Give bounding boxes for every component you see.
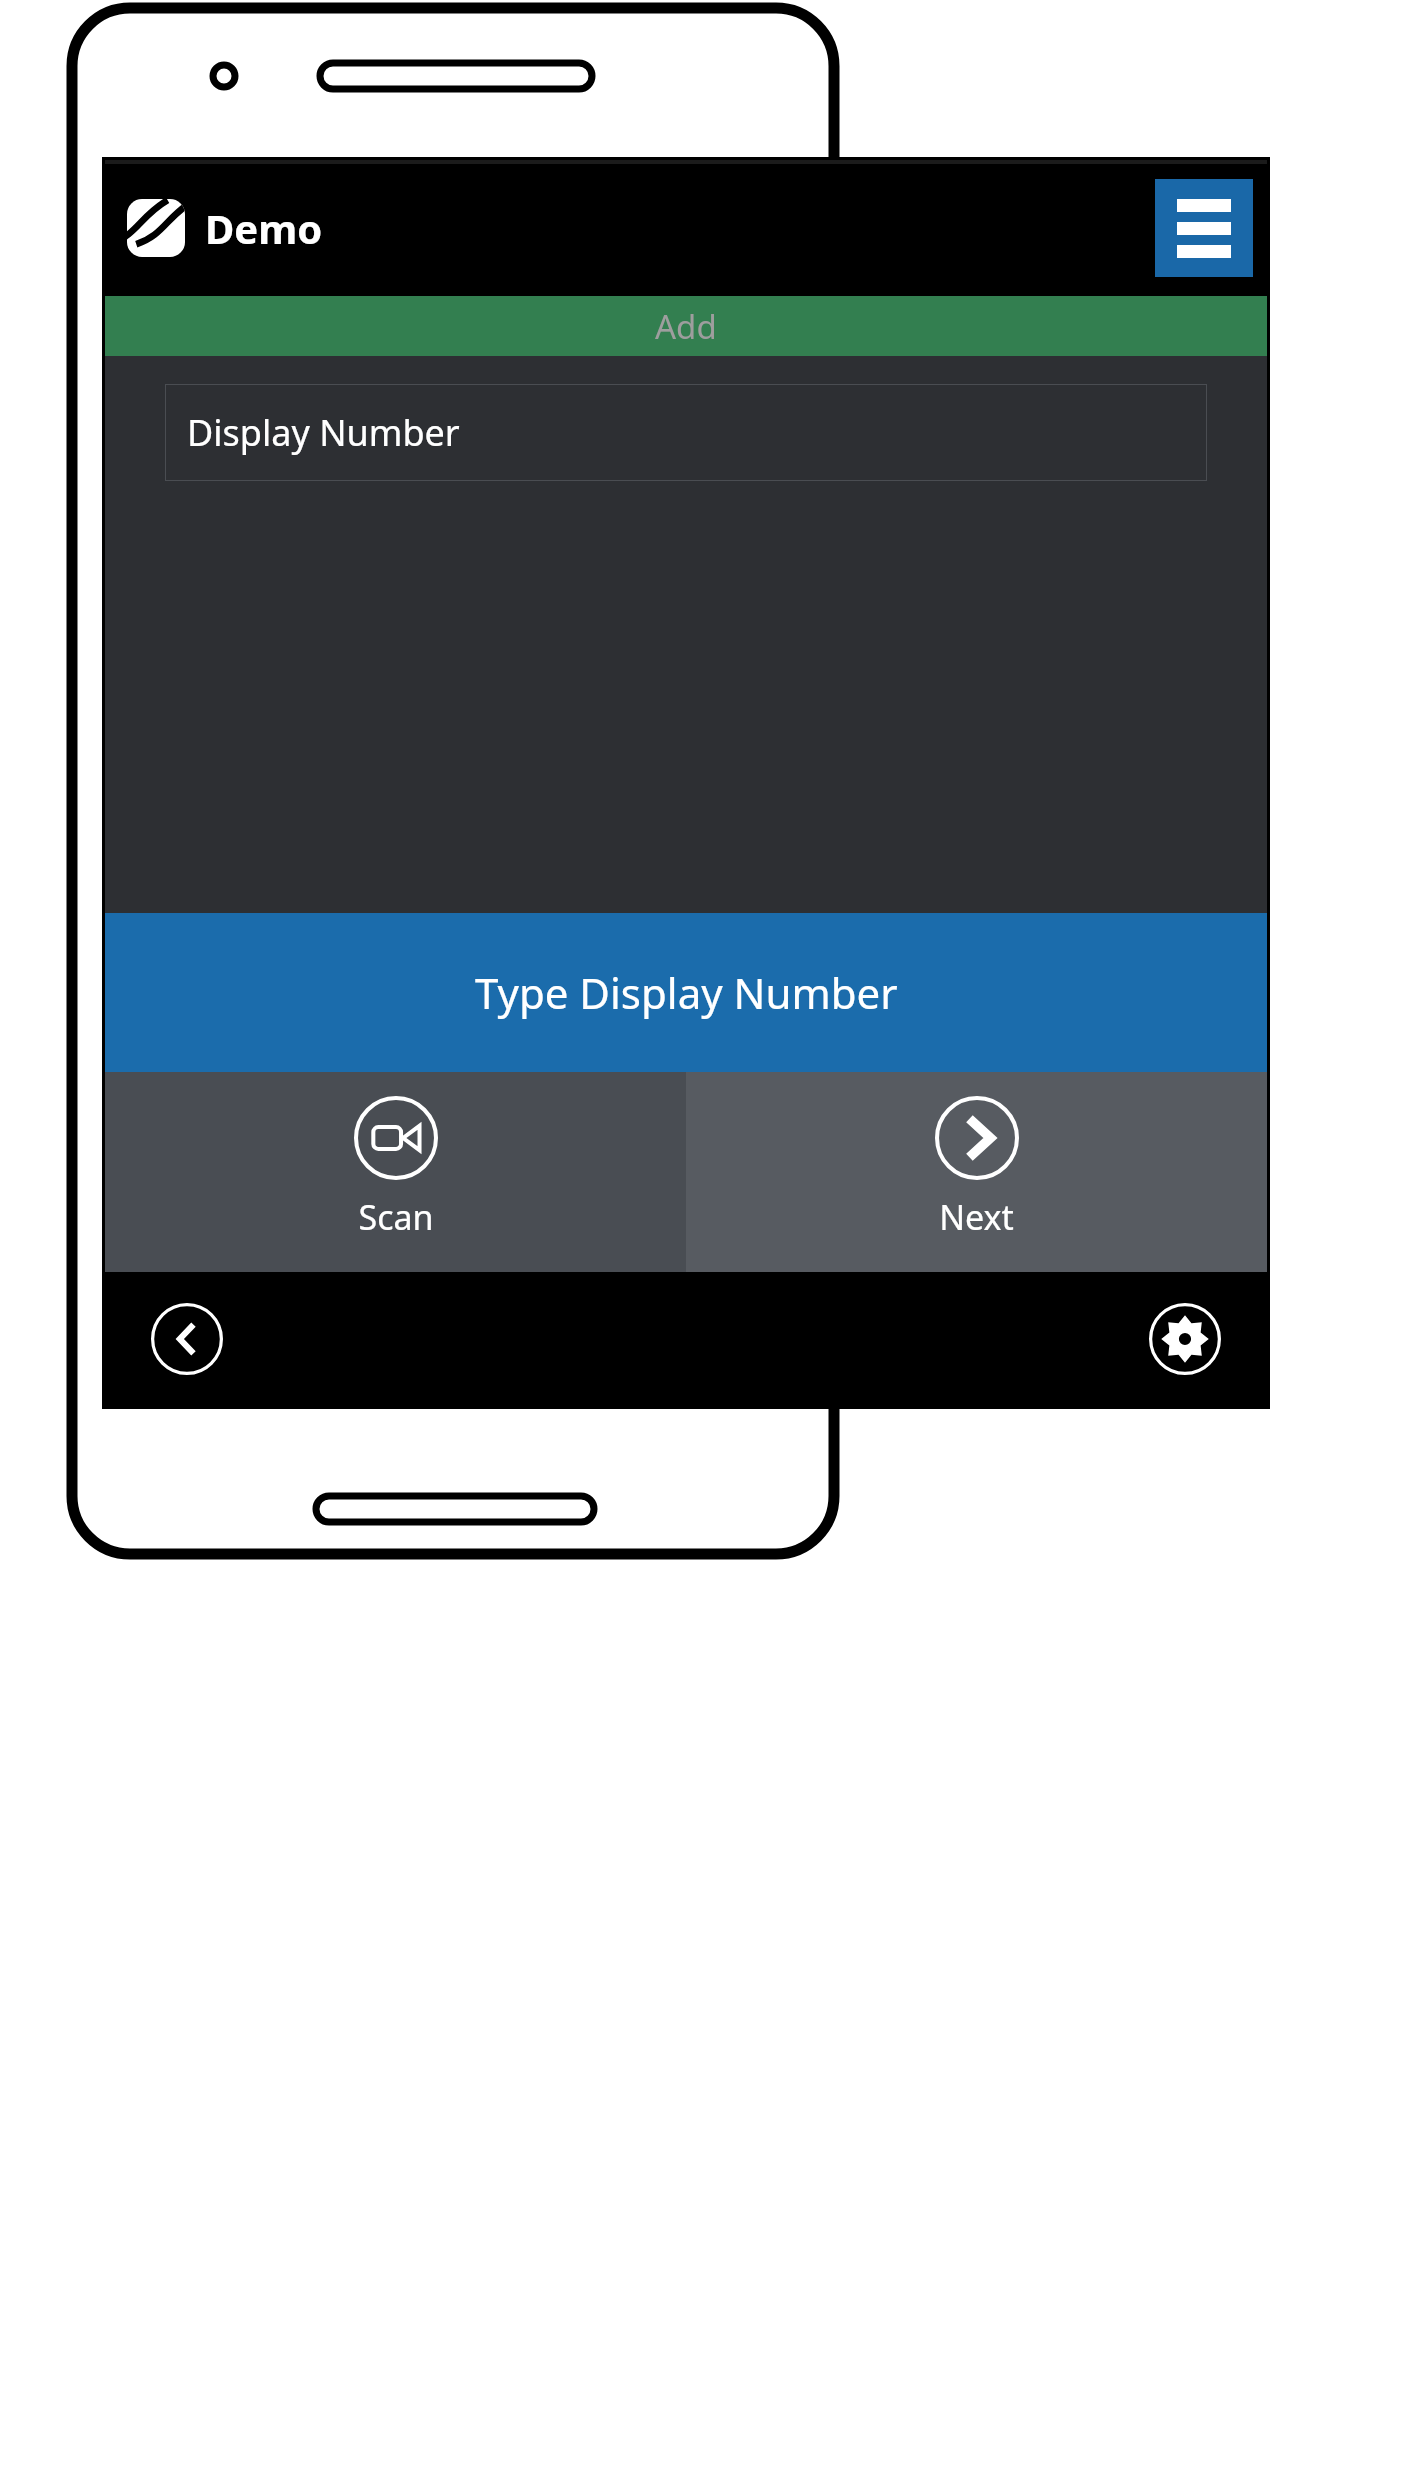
staticText: Display Number (187, 408, 460, 457)
button[interactable]: Back (147, 1299, 227, 1379)
button[interactable]: Add (105, 296, 1267, 356)
button[interactable]: Type Display Number (105, 913, 1267, 1072)
staticText: Add (655, 304, 717, 349)
staticText: Scan (358, 1194, 434, 1240)
button[interactable]: Settings (1145, 1299, 1225, 1379)
button[interactable]: Display Number (165, 384, 1207, 481)
staticText: Demo (205, 201, 323, 255)
button[interactable]: Menu (1155, 179, 1253, 277)
staticText: Type Display Number (475, 964, 898, 1021)
button[interactable]: Scan (105, 1072, 686, 1272)
staticText: Next (939, 1194, 1014, 1240)
button[interactable]: Next (686, 1072, 1267, 1272)
